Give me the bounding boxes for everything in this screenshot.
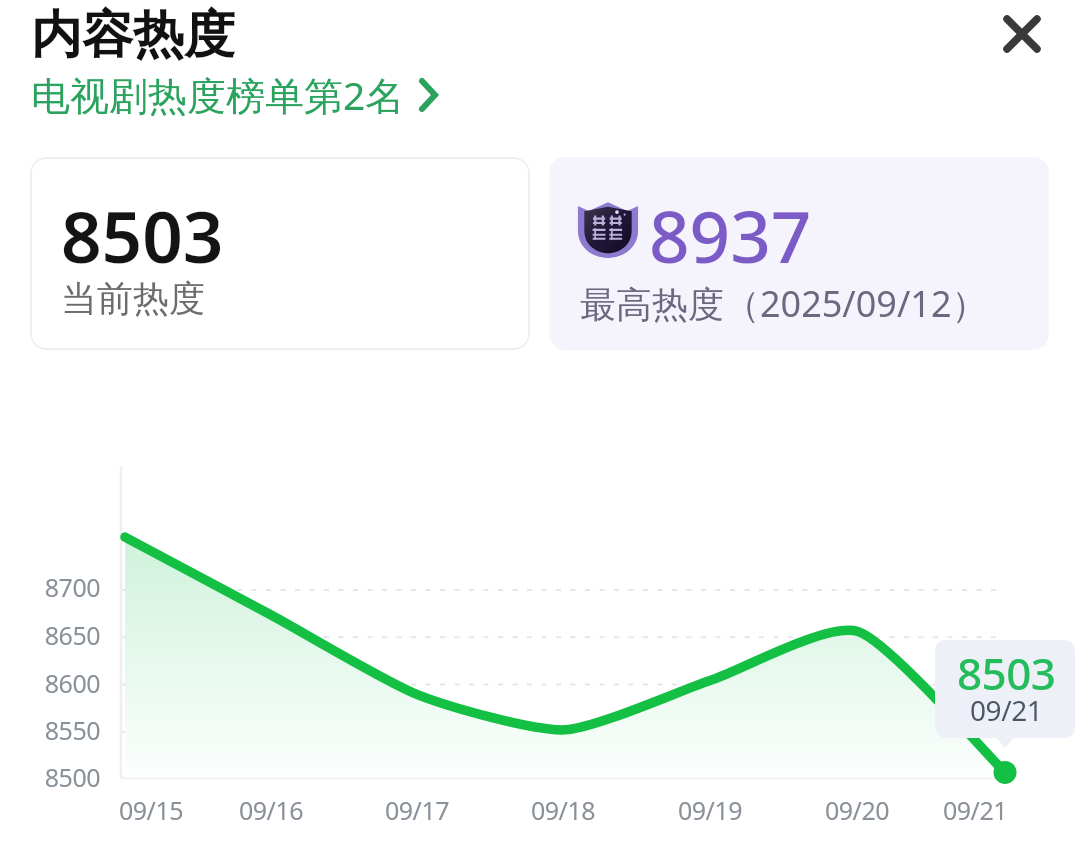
staticText: 8503	[957, 643, 1056, 703]
staticText: 09/21	[970, 691, 1043, 729]
button[interactable]: 电视剧热度榜单第2名	[31, 68, 437, 121]
staticText: 当前热度	[61, 276, 205, 321]
staticText: 电视剧热度榜单第2名	[31, 68, 405, 121]
staticText: 09/21	[915, 793, 1035, 827]
staticText: 8503	[61, 187, 224, 284]
staticText: 09/17	[357, 793, 477, 827]
staticText: 内容热度	[31, 3, 235, 67]
staticText: 09/18	[503, 793, 623, 827]
staticText: 8600	[0, 666, 100, 700]
button[interactable]: 8937	[549, 157, 1049, 350]
button[interactable]: 8503	[935, 640, 1075, 738]
staticText: 09/16	[211, 793, 331, 827]
button[interactable]: 8503	[30, 157, 530, 350]
staticText: 8550	[0, 713, 100, 747]
staticText: 8700	[0, 570, 100, 604]
button[interactable]: 内容热度	[31, 3, 235, 67]
staticText: 09/20	[797, 793, 917, 827]
staticText: 最高热度（2025/09/12）	[580, 279, 988, 328]
staticText: 8650	[0, 618, 100, 652]
staticText: 8500	[0, 760, 100, 794]
staticText: 09/19	[650, 793, 770, 827]
button[interactable]: Close	[982, 0, 1062, 74]
staticText: 8937	[649, 187, 812, 284]
staticText: 09/15	[91, 793, 211, 827]
